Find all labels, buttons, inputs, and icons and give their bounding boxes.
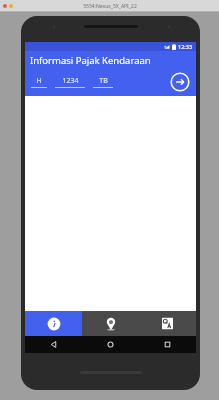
button[interactable]: Informasi xyxy=(25,311,82,336)
staticText: 1234 xyxy=(62,76,79,86)
staticText: H xyxy=(36,76,42,86)
button[interactable]: Recent apps xyxy=(139,336,196,353)
button[interactable]: TB xyxy=(93,76,113,88)
button[interactable]: 1234 xyxy=(55,76,85,88)
staticText: Informasi Pajak Kendaraan Bermotor xyxy=(30,54,192,67)
staticText: 5554:Nexus_5X_API_22 xyxy=(83,3,137,10)
button[interactable]: Cari xyxy=(169,71,191,93)
button[interactable]: Home xyxy=(82,336,139,353)
button[interactable]: Tanya Jawab xyxy=(139,311,196,336)
staticText: 12:33 xyxy=(178,43,193,50)
button[interactable]: H xyxy=(31,76,47,88)
button[interactable]: Lokasi xyxy=(82,311,139,336)
staticText: TB xyxy=(99,76,108,86)
button[interactable]: Back xyxy=(25,336,82,353)
